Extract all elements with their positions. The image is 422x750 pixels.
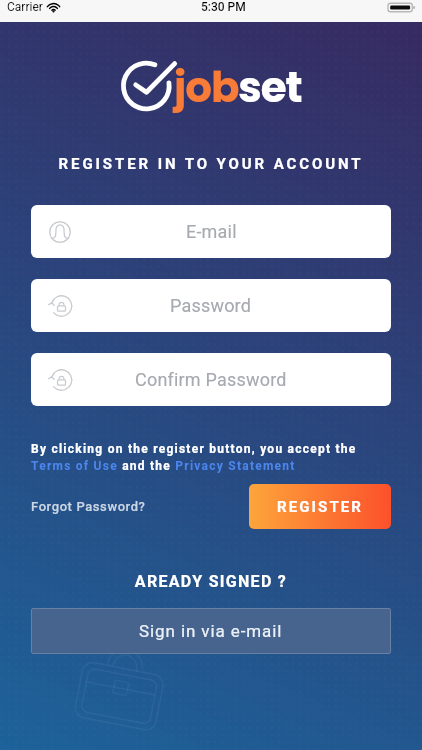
staticText: REGISTER IN TO YOUR ACCOUNT	[0, 155, 422, 173]
button[interactable]: Forgot Password?	[31, 499, 146, 514]
staticText: E-mail	[186, 221, 237, 242]
staticText: Carrier	[7, 0, 43, 14]
button[interactable]: Terms of Use and the Privacy Statement	[31, 459, 296, 473]
button[interactable]: REGISTER	[249, 484, 391, 529]
staticText: Password	[170, 295, 252, 316]
staticText: REGISTER	[277, 498, 364, 516]
staticText: 5:30 PM	[201, 0, 246, 14]
staticText: Confirm Password	[135, 369, 287, 390]
staticText: jobset	[174, 58, 302, 117]
staticText: By clicking on the register button, you …	[31, 442, 357, 456]
staticText: AREADY SIGNED ?	[0, 572, 422, 591]
button[interactable]: Password	[31, 279, 391, 332]
button[interactable]: Sign in via e-mail	[31, 608, 391, 654]
button[interactable]: Confirm Password	[31, 353, 391, 406]
staticText: Sign in via e-mail	[139, 621, 283, 641]
button[interactable]: E-mail	[31, 205, 391, 258]
